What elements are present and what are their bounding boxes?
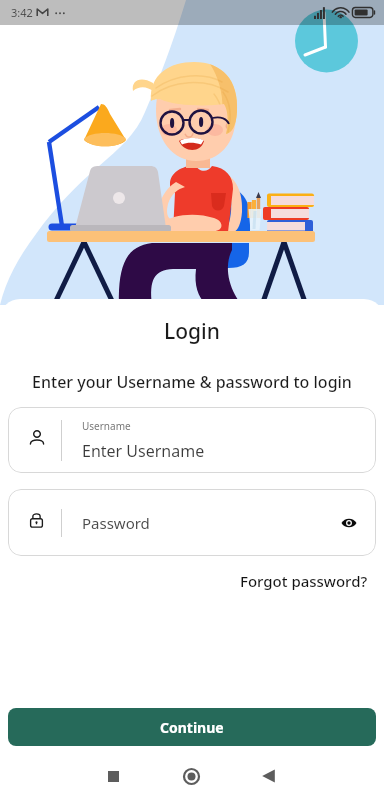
staticText: Forgot password? xyxy=(240,571,368,591)
button[interactable]: Show password xyxy=(330,501,374,545)
staticText: Login xyxy=(0,317,384,346)
staticText: Enter Username xyxy=(82,440,205,462)
staticText: Continue xyxy=(160,718,224,737)
button[interactable]: Home xyxy=(169,754,213,798)
button[interactable]: Recents xyxy=(91,754,135,798)
button[interactable]: Continue xyxy=(8,708,376,746)
button[interactable]: Back xyxy=(246,754,290,798)
button[interactable]: Password xyxy=(8,489,376,556)
staticText: Enter your Username & password to login xyxy=(0,371,384,393)
staticText: 3:42 xyxy=(11,5,33,20)
button[interactable]: Username xyxy=(8,407,376,473)
button[interactable]: Forgot password? xyxy=(238,568,370,594)
staticText: Username xyxy=(82,419,131,433)
staticText: Password xyxy=(82,513,330,533)
